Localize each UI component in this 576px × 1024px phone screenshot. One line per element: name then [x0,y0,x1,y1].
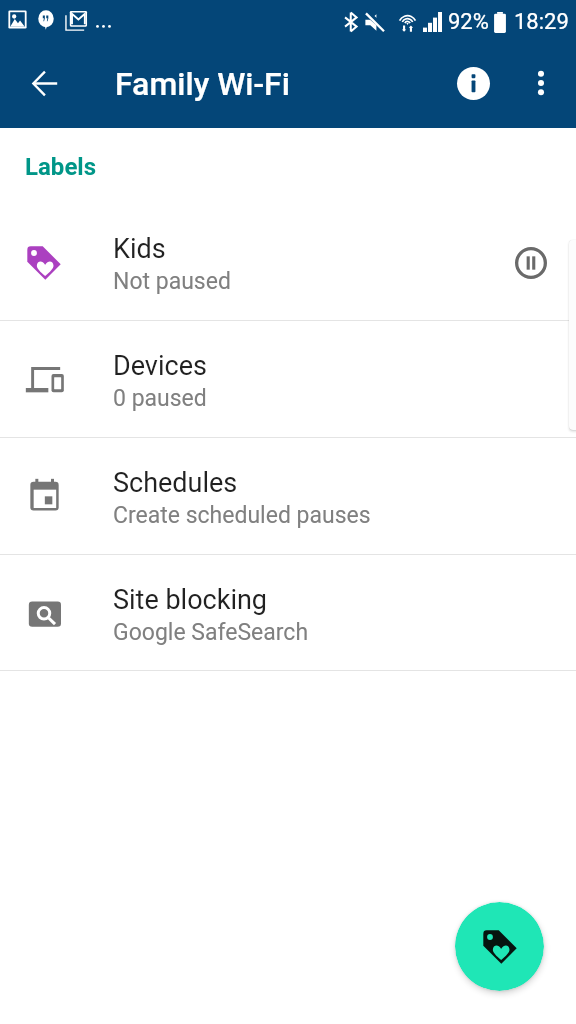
staticText: Labels [25,153,97,181]
staticText: 18:29 [514,9,569,35]
button[interactable]: Info [447,57,499,109]
button[interactable]: Devices [0,321,576,437]
staticText: Create scheduled pauses [113,502,371,529]
staticText: Not paused [113,268,231,295]
staticText: Devices [113,350,207,382]
button[interactable]: Back [19,57,71,109]
staticText: Kids [113,233,166,265]
staticText: Site blocking [113,584,268,616]
button[interactable]: Schedules [0,438,576,554]
staticText: Schedules [113,467,238,499]
staticText: Google SafeSearch [113,619,309,646]
staticText: 0 paused [113,385,207,412]
button[interactable]: Kids [0,204,576,320]
button[interactable]: Pause [501,233,561,293]
button[interactable]: Add label [455,902,544,991]
staticText: 92% [448,9,489,35]
button[interactable]: More options [515,57,567,109]
button[interactable]: Site blocking [0,555,576,670]
staticText: Family Wi-Fi [115,65,290,103]
